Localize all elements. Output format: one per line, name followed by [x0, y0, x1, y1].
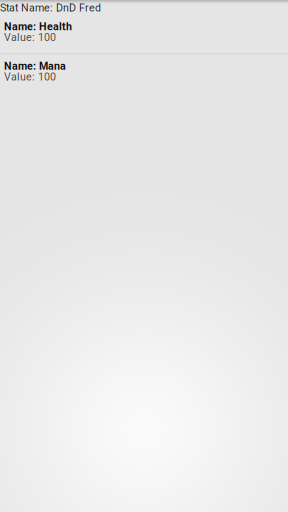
staticText: Stat Name: DnD Fred [0, 3, 101, 13]
button[interactable]: Name: Health [0, 13, 288, 53]
staticText: Name: Mana [4, 61, 66, 71]
staticText: Name: Health [4, 22, 72, 32]
button[interactable]: Name: Mana [0, 55, 288, 93]
staticText: Value: 100 [4, 72, 56, 82]
staticText: Value: 100 [4, 32, 56, 42]
